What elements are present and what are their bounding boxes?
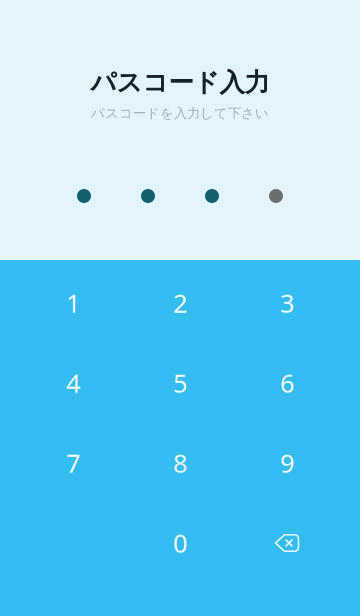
button[interactable]: 1 xyxy=(19,263,126,343)
staticText: 2 xyxy=(173,286,187,320)
staticText: 6 xyxy=(280,366,294,400)
staticText: パスコード入力 xyxy=(90,67,269,98)
staticText: パスコードを入力して下さい xyxy=(91,105,269,121)
staticText: 3 xyxy=(280,286,294,320)
staticText: 5 xyxy=(173,366,187,400)
button[interactable]: 2 xyxy=(126,263,233,343)
button[interactable]: 4 xyxy=(19,343,126,423)
button[interactable]: 6 xyxy=(233,343,340,423)
staticText: 9 xyxy=(280,446,294,480)
button[interactable]: 8 xyxy=(126,423,233,503)
staticText: 8 xyxy=(173,446,187,480)
button[interactable]: Delete xyxy=(233,503,340,583)
button[interactable]: 9 xyxy=(233,423,340,503)
button[interactable]: 3 xyxy=(233,263,340,343)
staticText: 1 xyxy=(66,286,80,320)
button[interactable]: 5 xyxy=(126,343,233,423)
button[interactable]: 0 xyxy=(126,503,233,583)
button[interactable]: 7 xyxy=(19,423,126,503)
staticText: 7 xyxy=(66,446,80,480)
staticText: 4 xyxy=(66,366,80,400)
staticText: 0 xyxy=(173,526,187,560)
